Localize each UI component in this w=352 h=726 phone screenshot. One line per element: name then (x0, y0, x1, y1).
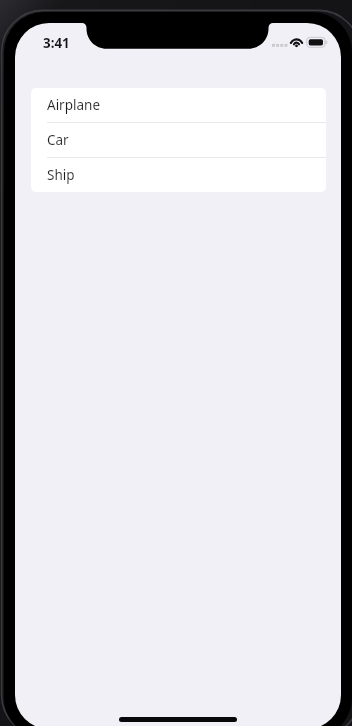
button[interactable]: Car (31, 123, 326, 158)
staticText: 3:41 (43, 34, 70, 52)
other: Signal, wi-fi and battery status (270, 36, 332, 52)
button[interactable]: Airplane (31, 88, 326, 123)
staticText: Airplane (47, 96, 101, 114)
button[interactable]: Ship (31, 158, 326, 192)
staticText: Ship (47, 166, 75, 184)
staticText: Car (47, 131, 69, 149)
